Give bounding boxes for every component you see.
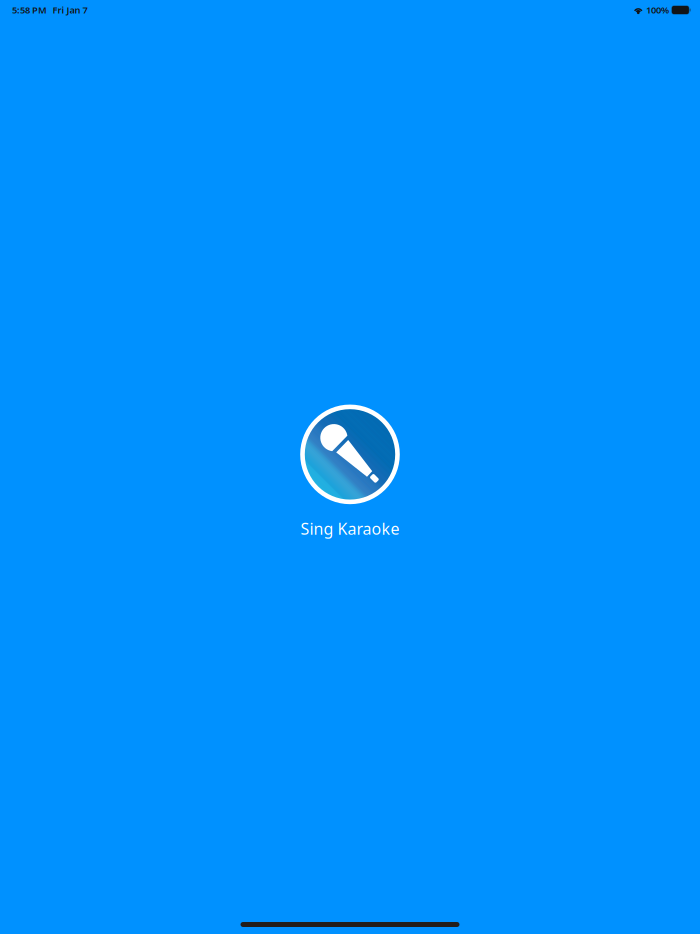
staticText: Fri Jan 7 <box>52 4 87 16</box>
button[interactable]: Sing Karaoke <box>300 407 399 539</box>
staticText: 5:58 PM <box>12 4 47 16</box>
staticText: 100% <box>646 4 669 16</box>
staticText: Sing Karaoke <box>300 518 399 539</box>
